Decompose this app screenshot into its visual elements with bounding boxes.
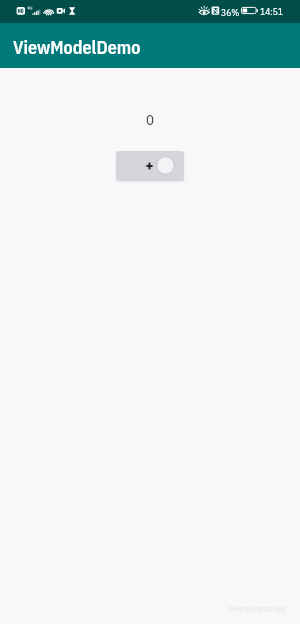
staticText: 少年全栈全能技术社区 <box>227 605 287 613</box>
staticText: ViewModelDemo <box>13 36 141 59</box>
staticText: 14:51 <box>260 5 283 17</box>
staticText: 36% <box>221 6 240 18</box>
staticText: 0 <box>146 110 155 129</box>
button[interactable]: Increment counter <box>116 151 184 181</box>
